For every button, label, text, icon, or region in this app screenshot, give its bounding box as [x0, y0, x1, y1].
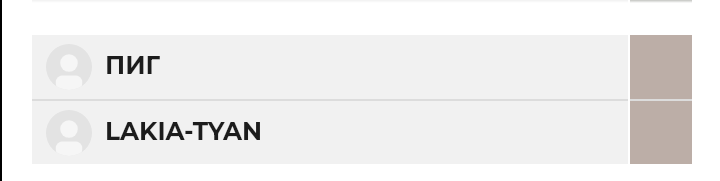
staticText: LAKIA-TYAN: [105, 116, 263, 146]
button[interactable]: ПИГ: [32, 35, 628, 99]
staticText: ПИГ: [105, 50, 161, 80]
button[interactable]: LAKIA-TYAN: [32, 101, 628, 164]
